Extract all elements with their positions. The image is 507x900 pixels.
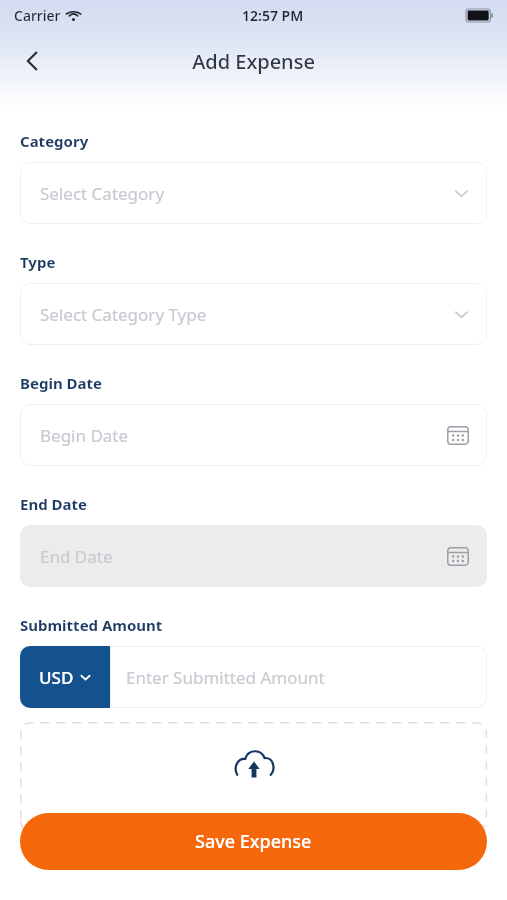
button[interactable]: Select Category Type [20,283,487,345]
staticText: Enter Submitted Amount [126,666,325,689]
staticText: Carrier [14,6,61,25]
button[interactable]: Back [10,39,54,83]
button[interactable]: USD [20,646,110,708]
button[interactable]: Enter Submitted Amount [110,646,487,708]
button[interactable]: Upload receipt [20,722,487,832]
button[interactable]: Begin Date [20,404,487,466]
staticText: End Date [40,545,113,568]
button[interactable]: Select Category [20,162,487,224]
staticText: Submitted Amount [20,615,163,635]
staticText: USD [39,666,74,689]
staticText: Add Expense [192,48,315,75]
staticText: Begin Date [40,424,129,447]
staticText: Category [20,131,89,151]
button[interactable]: Save Expense [20,813,487,870]
staticText: End Date [20,494,87,514]
staticText: Save Expense [195,829,312,854]
staticText: Begin Date [20,373,102,393]
staticText: 12:57 PM [242,6,304,25]
staticText: Select Category Type [40,303,207,326]
button[interactable]: End Date [20,525,487,587]
staticText: Select Category [40,182,165,205]
staticText: Type [20,252,56,272]
